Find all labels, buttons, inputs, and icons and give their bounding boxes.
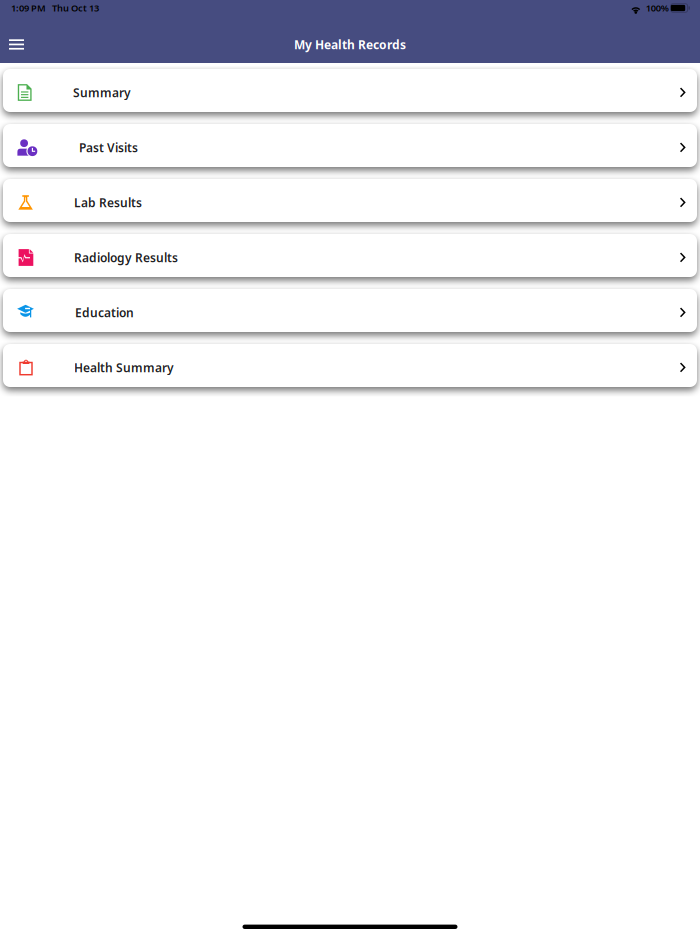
staticText: 100%	[646, 2, 669, 14]
button[interactable]: Menu	[0, 31, 34, 58]
button[interactable]: Lab Results	[3, 179, 697, 222]
staticText: Education	[75, 304, 134, 320]
button[interactable]: Summary	[3, 69, 697, 112]
staticText: My Health Records	[294, 36, 406, 52]
staticText: Thu Oct 13	[52, 2, 99, 14]
staticText: 1:09 PM	[11, 2, 46, 14]
staticText: Health Summary	[74, 359, 174, 375]
button[interactable]: Education	[3, 289, 697, 332]
staticText: Past Visits	[79, 139, 138, 155]
button[interactable]: Health Summary	[3, 344, 697, 387]
button[interactable]: Radiology Results	[3, 234, 697, 277]
staticText: Summary	[73, 84, 131, 100]
staticText: Radiology Results	[74, 249, 178, 265]
staticText: Lab Results	[74, 194, 142, 210]
button[interactable]: Past Visits	[3, 124, 697, 167]
